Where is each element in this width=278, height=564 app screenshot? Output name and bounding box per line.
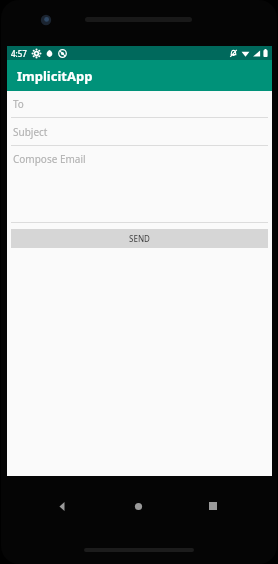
staticText: ImplicitApp (17, 67, 93, 85)
button[interactable]: Subject (7, 118, 272, 146)
button[interactable]: Back (52, 496, 72, 516)
button[interactable]: Compose Email (7, 146, 272, 223)
button[interactable]: Home (128, 496, 148, 516)
staticText: Compose Email (13, 152, 86, 166)
staticText: 4:57 (11, 48, 27, 59)
button[interactable]: To (7, 91, 272, 118)
staticText: Subject (13, 125, 48, 139)
staticText: To (13, 97, 24, 111)
staticText: SEND (129, 233, 150, 244)
button[interactable]: SEND (11, 229, 268, 248)
button[interactable]: Recent apps (203, 496, 223, 516)
